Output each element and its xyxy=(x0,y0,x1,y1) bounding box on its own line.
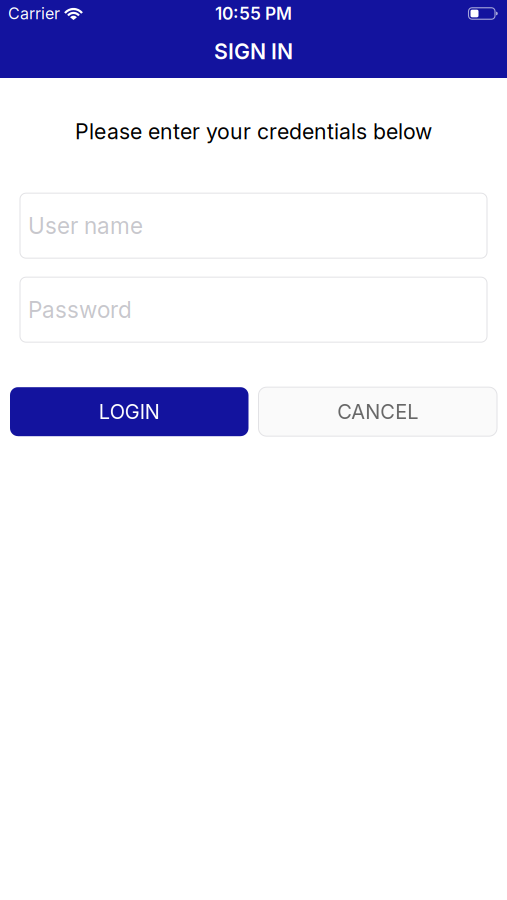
staticText: CANCEL xyxy=(337,400,418,423)
staticText: SIGN IN xyxy=(214,39,293,64)
button[interactable]: CANCEL xyxy=(258,387,497,436)
staticText: Carrier xyxy=(8,4,60,23)
button[interactable]: User name xyxy=(20,193,487,258)
staticText: User name xyxy=(28,212,143,239)
staticText: Please enter your credentials below xyxy=(75,119,432,144)
button[interactable]: Password xyxy=(20,277,487,342)
button[interactable]: LOGIN xyxy=(10,387,248,436)
staticText: 10:55 PM xyxy=(215,3,292,24)
staticText: Password xyxy=(28,296,132,323)
staticText: LOGIN xyxy=(99,400,160,423)
